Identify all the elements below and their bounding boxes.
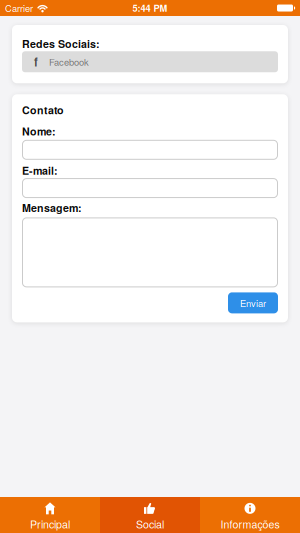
- staticText: E-mail:: [22, 163, 58, 178]
- staticText: Nome:: [22, 123, 56, 139]
- staticText: Enviar: [240, 296, 266, 310]
- button[interactable]: Informações: [200, 497, 300, 533]
- button[interactable]: Enviar: [228, 292, 278, 313]
- staticText: Contato: [22, 102, 64, 118]
- staticText: Principal: [30, 516, 70, 532]
- staticText: f: [34, 54, 38, 70]
- button[interactable]: f: [22, 51, 278, 72]
- button[interactable]: Social: [100, 497, 200, 533]
- button[interactable]: Principal: [0, 497, 100, 533]
- staticText: 5:44 PM: [132, 1, 167, 15]
- staticText: Redes Sociais:: [22, 36, 100, 51]
- staticText: Mensagem:: [22, 200, 82, 215]
- staticText: Social: [136, 516, 164, 532]
- staticText: Facebook: [49, 55, 89, 68]
- staticText: Informações: [220, 516, 279, 532]
- staticText: Carrier: [5, 1, 33, 15]
